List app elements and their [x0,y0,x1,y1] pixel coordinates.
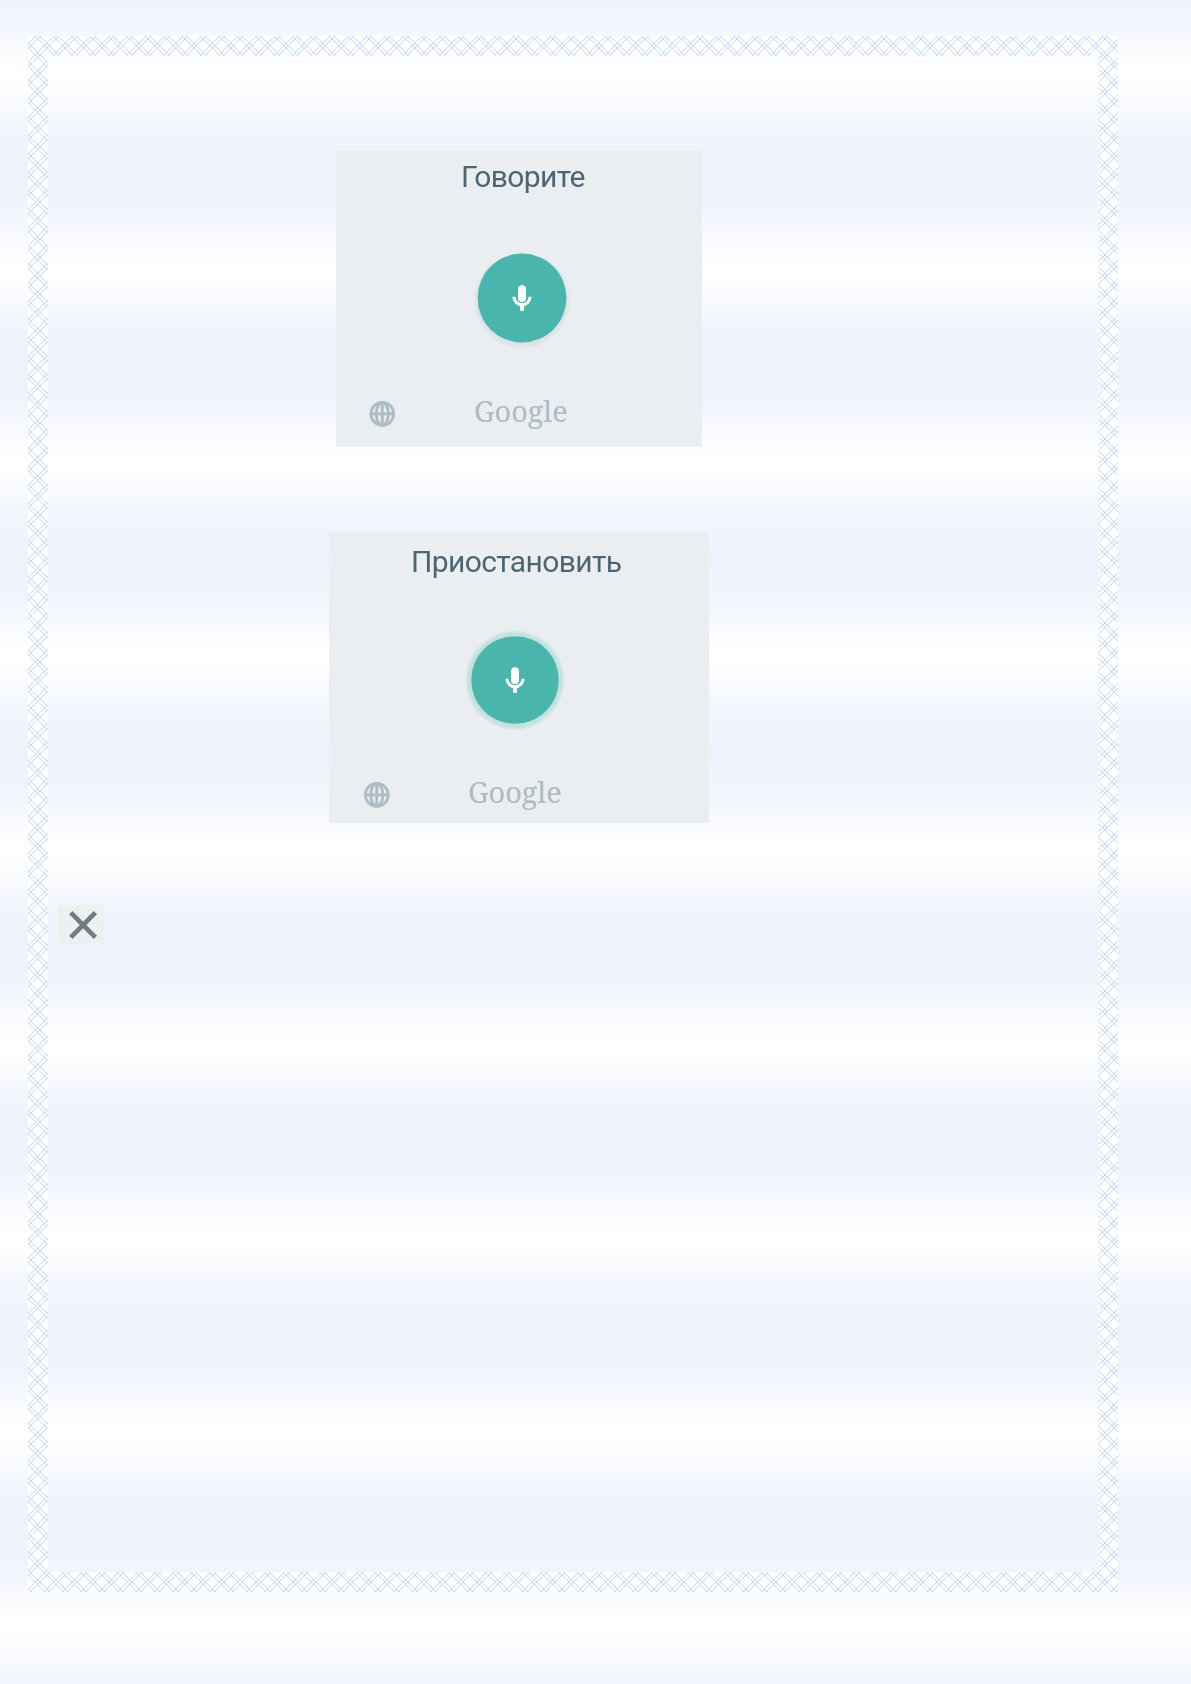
button[interactable]: Приостановить [329,532,709,823]
staticText: Приостановить [411,544,622,579]
button[interactable]: Microphone [470,246,574,350]
button[interactable]: Close [58,905,105,945]
button[interactable]: Говорите [336,151,702,447]
staticText: Google [468,772,562,811]
staticText: Google [474,391,568,430]
button[interactable]: Microphone [463,628,567,732]
staticText: Говорите [461,159,585,194]
